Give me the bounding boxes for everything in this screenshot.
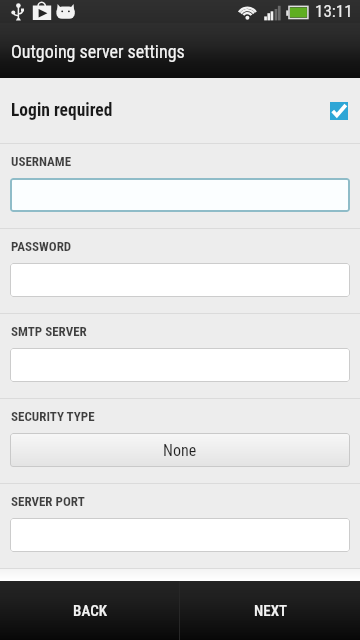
staticText: BACK <box>73 602 107 620</box>
button[interactable]: SERVER PORT <box>10 518 350 552</box>
staticText: SECURITY TYPE <box>11 409 95 424</box>
button[interactable]: None <box>10 433 350 467</box>
staticText: None <box>163 441 197 460</box>
button[interactable]: PASSWORD <box>10 263 350 297</box>
staticText: SERVER PORT <box>11 494 85 509</box>
staticText: Login required <box>11 100 113 121</box>
staticText: Outgoing server settings <box>11 41 185 62</box>
staticText: NEXT <box>254 602 287 620</box>
other: Login required checkbox <box>330 102 348 120</box>
staticText: 13:11 <box>315 1 353 21</box>
staticText: SMTP SERVER <box>11 324 87 339</box>
staticText: USERNAME <box>11 154 72 169</box>
button[interactable]: NEXT <box>180 581 360 640</box>
button[interactable]: USERNAME <box>10 178 350 212</box>
button[interactable]: BACK <box>0 581 179 640</box>
staticText: PASSWORD <box>11 239 72 254</box>
button[interactable]: SMTP SERVER <box>10 348 350 382</box>
button[interactable]: Login required <box>0 78 360 143</box>
